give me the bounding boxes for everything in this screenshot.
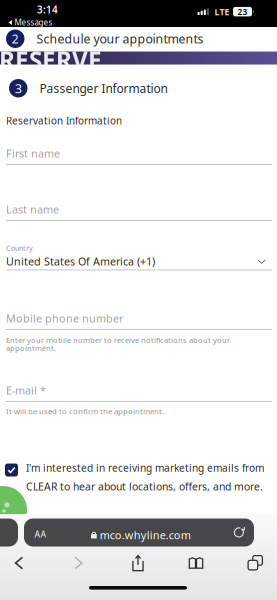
staticText: AA [34,528,46,540]
staticText: First name [6,146,60,161]
button[interactable]: Bookmarks [174,548,218,578]
button[interactable]: Messages [4,14,56,30]
staticText: LTE [214,5,229,18]
button[interactable]: Back [0,548,41,578]
staticText: Reservation Information [6,114,122,127]
staticText: 3:14 [37,3,58,16]
staticText: CLEAR to hear about locations, offers, a… [26,479,263,493]
staticText: Country [6,243,33,253]
staticText: RESERVE [0,43,102,77]
staticText: appointment. [6,343,56,353]
button[interactable]: Tabs [233,548,277,578]
button[interactable]: Share [116,548,160,578]
staticText: Last name [6,202,59,217]
button[interactable]: I'm interested in receiving marketing em… [5,461,264,493]
staticText: Passenger Information [39,80,167,96]
staticText: Messages [14,17,52,28]
staticText: mco.whyline.com [100,527,191,542]
button[interactable]: Forward [56,548,100,578]
staticText: 23 [237,6,247,17]
staticText: Enter your mobile number to receive noti… [6,335,230,345]
staticText: E-mail * [6,383,46,398]
staticText: 3 [15,79,22,97]
staticText: United States Of America (+1) [6,254,155,268]
staticText: Mobile phone number [6,311,123,326]
staticText: I'm interested in receiving marketing em… [26,461,264,475]
staticText: It will be used to confirm the appointme… [6,406,164,416]
button[interactable]: AA [24,518,254,546]
staticText: 2 [12,31,19,47]
staticText: Schedule your appointments [36,30,203,47]
